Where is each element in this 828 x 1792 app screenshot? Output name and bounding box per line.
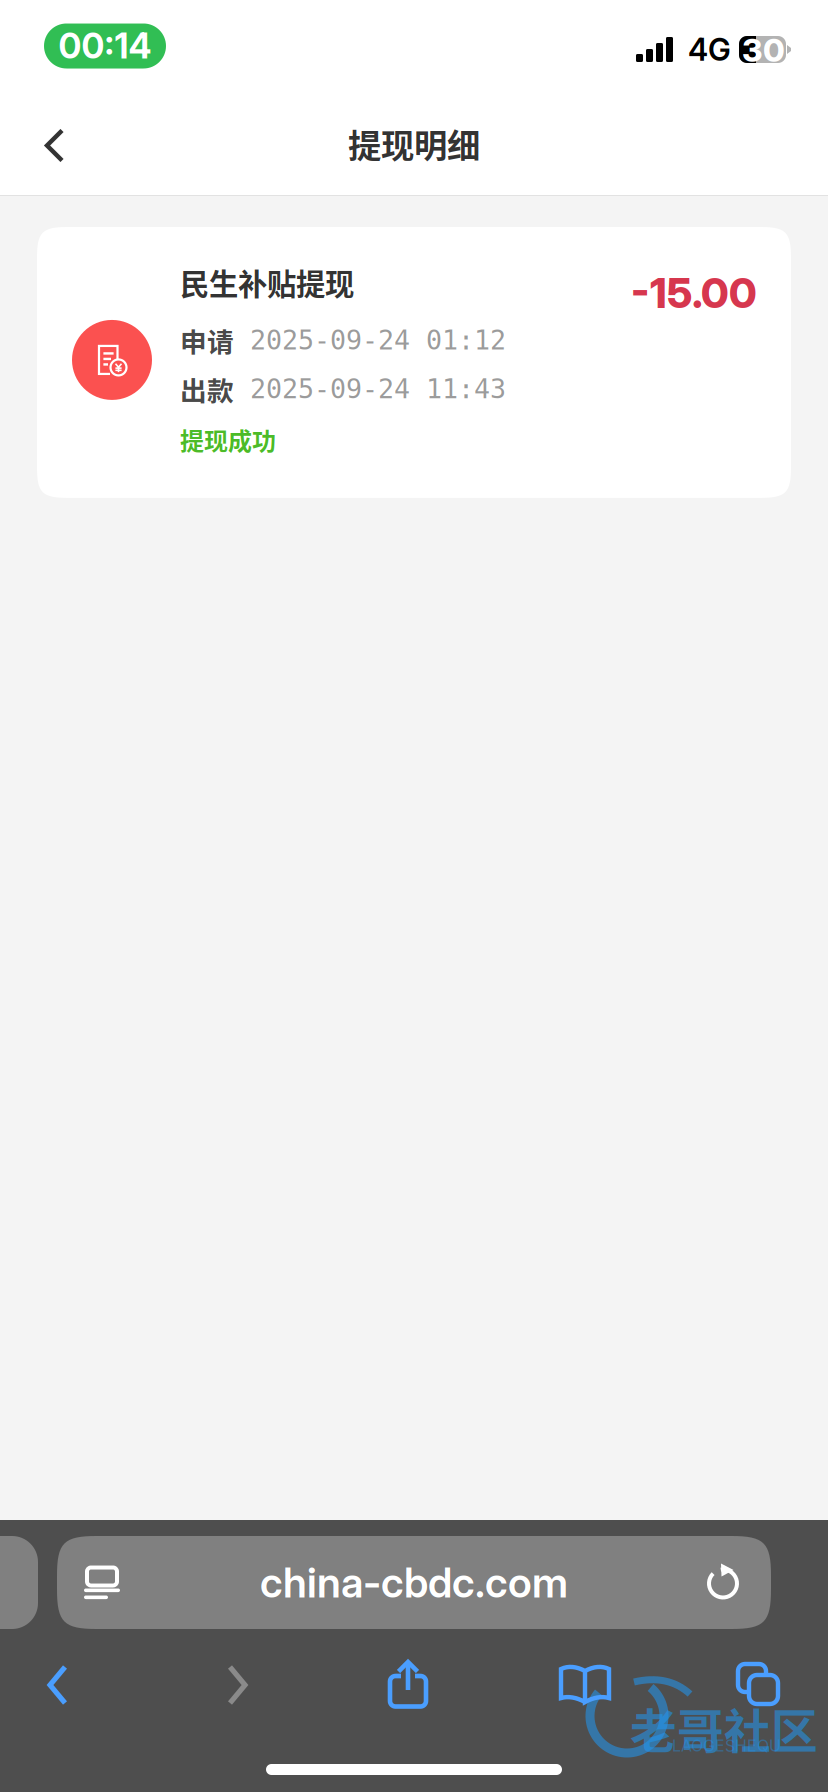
staticText: 老哥社区 (630, 1694, 818, 1762)
button[interactable]: Back (0, 92, 94, 195)
staticText: 4G (688, 33, 731, 66)
staticText: 民生补贴提现 (180, 262, 354, 302)
staticText: 2025-09-24 11:43 (250, 374, 506, 404)
button[interactable]: Forward (187, 1642, 287, 1728)
staticText: 提现明细 (348, 121, 480, 166)
button[interactable]: Bookmarks (535, 1642, 635, 1728)
button[interactable]: Tabs (709, 1642, 809, 1728)
staticText: 30 (742, 31, 785, 69)
button[interactable]: Share (359, 1642, 459, 1728)
staticText: LAOGESHEQU (672, 1736, 781, 1755)
staticText: 00:14 (58, 27, 151, 65)
button[interactable]: china-cbdc.com (57, 1536, 771, 1629)
staticText: 出款 (180, 371, 234, 407)
staticText: 提现成功 (180, 421, 276, 458)
staticText: 2025-09-24 01:12 (250, 326, 506, 355)
staticText: -15.00 (631, 273, 757, 313)
staticText: china-cbdc.com (260, 1557, 568, 1607)
staticText: 申请 (180, 322, 234, 359)
button[interactable]: 民生补贴提现 (37, 227, 791, 498)
button[interactable]: Back (8, 1642, 108, 1728)
